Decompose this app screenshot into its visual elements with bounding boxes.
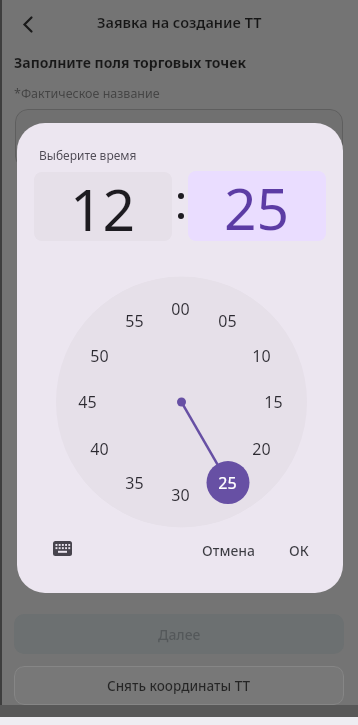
staticText: 45 bbox=[78, 391, 97, 413]
button[interactable]: ОК bbox=[279, 532, 319, 568]
button[interactable]: 25 bbox=[188, 171, 326, 241]
button[interactable] bbox=[14, 8, 46, 40]
button[interactable]: Снять координаты ТТ bbox=[14, 666, 344, 705]
staticText: Снять координаты ТТ bbox=[107, 677, 251, 695]
staticText: 10 bbox=[252, 345, 271, 367]
staticText: 30 bbox=[171, 484, 190, 506]
staticText: Заявка на создание ТТ bbox=[97, 12, 262, 32]
staticText: *Фактическое название bbox=[14, 85, 160, 102]
staticText: 50 bbox=[90, 345, 109, 367]
staticText: 40 bbox=[90, 438, 109, 460]
button[interactable] bbox=[53, 537, 87, 567]
staticText: 25 bbox=[224, 171, 290, 239]
staticText: 25 bbox=[218, 472, 237, 494]
staticText: Далее bbox=[158, 625, 201, 644]
staticText: 35 bbox=[125, 472, 144, 494]
staticText: 12 bbox=[70, 172, 136, 239]
staticText: 20 bbox=[252, 438, 271, 460]
staticText: 00 bbox=[171, 298, 190, 320]
button[interactable]: 12 bbox=[34, 172, 172, 241]
button[interactable] bbox=[15, 109, 343, 169]
button[interactable]: Отмена bbox=[199, 532, 259, 568]
staticText: ОК bbox=[289, 541, 309, 560]
staticText: 55 bbox=[125, 310, 144, 332]
staticText: 15 bbox=[264, 391, 283, 413]
staticText: 05 bbox=[218, 310, 237, 332]
staticText: Выберите время bbox=[39, 147, 137, 163]
staticText: Заполните поля торговых точек bbox=[14, 53, 247, 72]
staticText: Отмена bbox=[202, 541, 256, 560]
